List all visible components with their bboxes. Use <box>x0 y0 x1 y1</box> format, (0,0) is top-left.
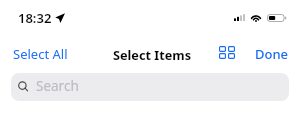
staticText: Done <box>255 45 289 63</box>
button[interactable]: Search <box>11 73 289 101</box>
button[interactable]: Grid view <box>215 41 239 64</box>
staticText: Select All <box>13 45 68 63</box>
staticText: Select Items <box>113 46 192 63</box>
button[interactable]: Select All <box>0 39 76 69</box>
staticText: 18:32 <box>18 9 52 27</box>
button[interactable]: Done <box>247 39 300 69</box>
staticText: Search <box>36 77 79 95</box>
